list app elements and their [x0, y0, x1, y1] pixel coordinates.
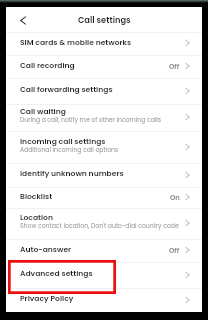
staticText: Advanced settings [20, 268, 93, 279]
button[interactable]: Back [12, 9, 34, 31]
staticText: Off [169, 62, 180, 72]
button[interactable]: Incoming call settings [6, 132, 202, 163]
staticText: Identify unknown numbers [20, 168, 124, 179]
staticText: Additional incoming call options [20, 146, 119, 155]
staticText: Off [169, 246, 180, 256]
staticText: Show contact location, Don't auto-dial c… [20, 222, 179, 231]
staticText: On [170, 193, 180, 203]
button[interactable]: Blocklist [6, 188, 202, 208]
staticText: Incoming call settings [20, 136, 106, 147]
staticText: Privacy Policy [20, 293, 74, 304]
button[interactable]: Location [6, 209, 202, 239]
button[interactable]: Privacy Policy [6, 289, 202, 312]
button[interactable]: Call recording [6, 56, 202, 78]
staticText: During a call, notify me of other incomi… [20, 116, 161, 125]
button[interactable]: Auto-answer [6, 240, 202, 262]
staticText: Location [20, 212, 53, 223]
button[interactable]: SIM cards & mobile networks [6, 33, 202, 55]
button[interactable]: Advanced settings [6, 263, 202, 288]
staticText: Call forwarding settings [20, 84, 113, 95]
staticText: Auto-answer [20, 244, 72, 255]
button[interactable]: Identify unknown numbers [6, 164, 202, 187]
staticText: Blocklist [20, 191, 53, 202]
button[interactable]: Call waiting [6, 105, 202, 131]
staticText: SIM cards & mobile networks [20, 37, 132, 48]
staticText: Call settings [78, 14, 131, 26]
button[interactable]: Call forwarding settings [6, 79, 202, 104]
staticText: Call recording [20, 60, 75, 71]
staticText: Call waiting [20, 106, 66, 117]
